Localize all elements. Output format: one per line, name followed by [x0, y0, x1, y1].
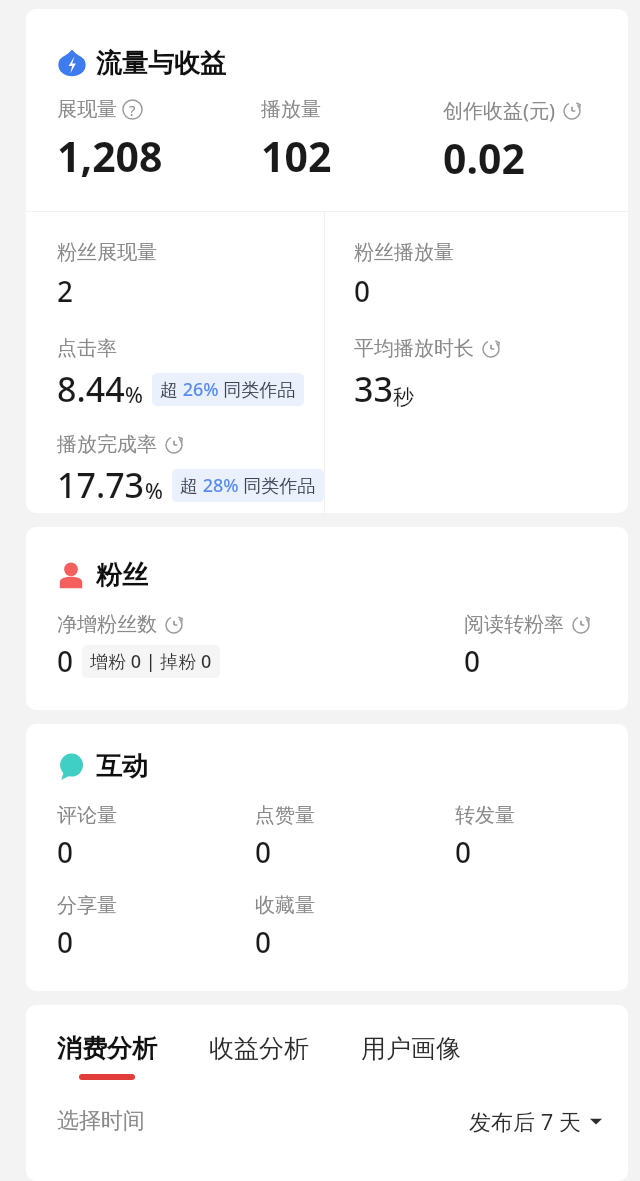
staticText: 33 [354, 366, 393, 412]
staticText: 播放量 [261, 97, 321, 122]
staticText: 0 [354, 272, 371, 310]
staticText: 0 [255, 833, 272, 871]
staticText: 点击率 [57, 336, 117, 361]
staticText: 阅读转粉率 [464, 612, 564, 637]
button[interactable]: 历史收益 [562, 101, 582, 121]
staticText: ? [129, 100, 136, 120]
button[interactable]: 收益分析 [209, 1033, 309, 1064]
staticText: 超 28% 同类作品 [180, 473, 316, 498]
staticText: 点赞量 [255, 803, 315, 828]
staticText: 增粉 0 | 掉粉 0 [90, 649, 212, 674]
staticText: 8.44 [57, 366, 125, 412]
staticText: 分享量 [57, 893, 117, 918]
staticText: 0 [57, 833, 74, 871]
staticText: 展现量 [57, 97, 117, 122]
staticText: 转发量 [455, 803, 515, 828]
staticText: 评论量 [57, 803, 117, 828]
button[interactable]: 发布后 7 天 [469, 1106, 602, 1136]
staticText: 粉丝 [96, 559, 148, 592]
staticText: 创作收益(元) [443, 97, 555, 124]
staticText: 收藏量 [255, 893, 315, 918]
staticText: 2 [57, 272, 74, 310]
staticText: 17.73 [57, 462, 145, 508]
staticText: 平均播放时长 [354, 336, 474, 361]
staticText: 0 [57, 642, 74, 680]
staticText: 发布后 7 天 [469, 1106, 582, 1136]
staticText: 102 [261, 128, 332, 184]
staticText: 用户画像 [361, 1033, 461, 1064]
staticText: % [145, 477, 163, 506]
staticText: 0 [57, 923, 74, 961]
staticText: 秒 [393, 384, 414, 410]
staticText: 净增粉丝数 [57, 612, 157, 637]
staticText: 收益分析 [209, 1033, 309, 1064]
staticText: 0 [464, 642, 481, 680]
staticText: 0.02 [443, 130, 525, 186]
staticText: 0 [255, 923, 272, 961]
button[interactable]: 用户画像 [361, 1033, 461, 1064]
staticText: 互动 [96, 750, 148, 783]
staticText: 0 [455, 833, 472, 871]
staticText: 粉丝播放量 [354, 240, 454, 265]
staticText: 播放完成率 [57, 432, 157, 457]
staticText: 超 26% 同类作品 [160, 377, 296, 402]
staticText: 粉丝展现量 [57, 240, 157, 265]
button[interactable]: 帮助 [122, 99, 143, 120]
button[interactable]: 消费分析 [57, 1033, 157, 1080]
staticText: % [125, 381, 143, 410]
staticText: 选择时间 [57, 1107, 145, 1135]
staticText: 1,208 [57, 128, 163, 184]
staticText: 流量与收益 [96, 47, 226, 80]
staticText: 消费分析 [57, 1033, 157, 1064]
